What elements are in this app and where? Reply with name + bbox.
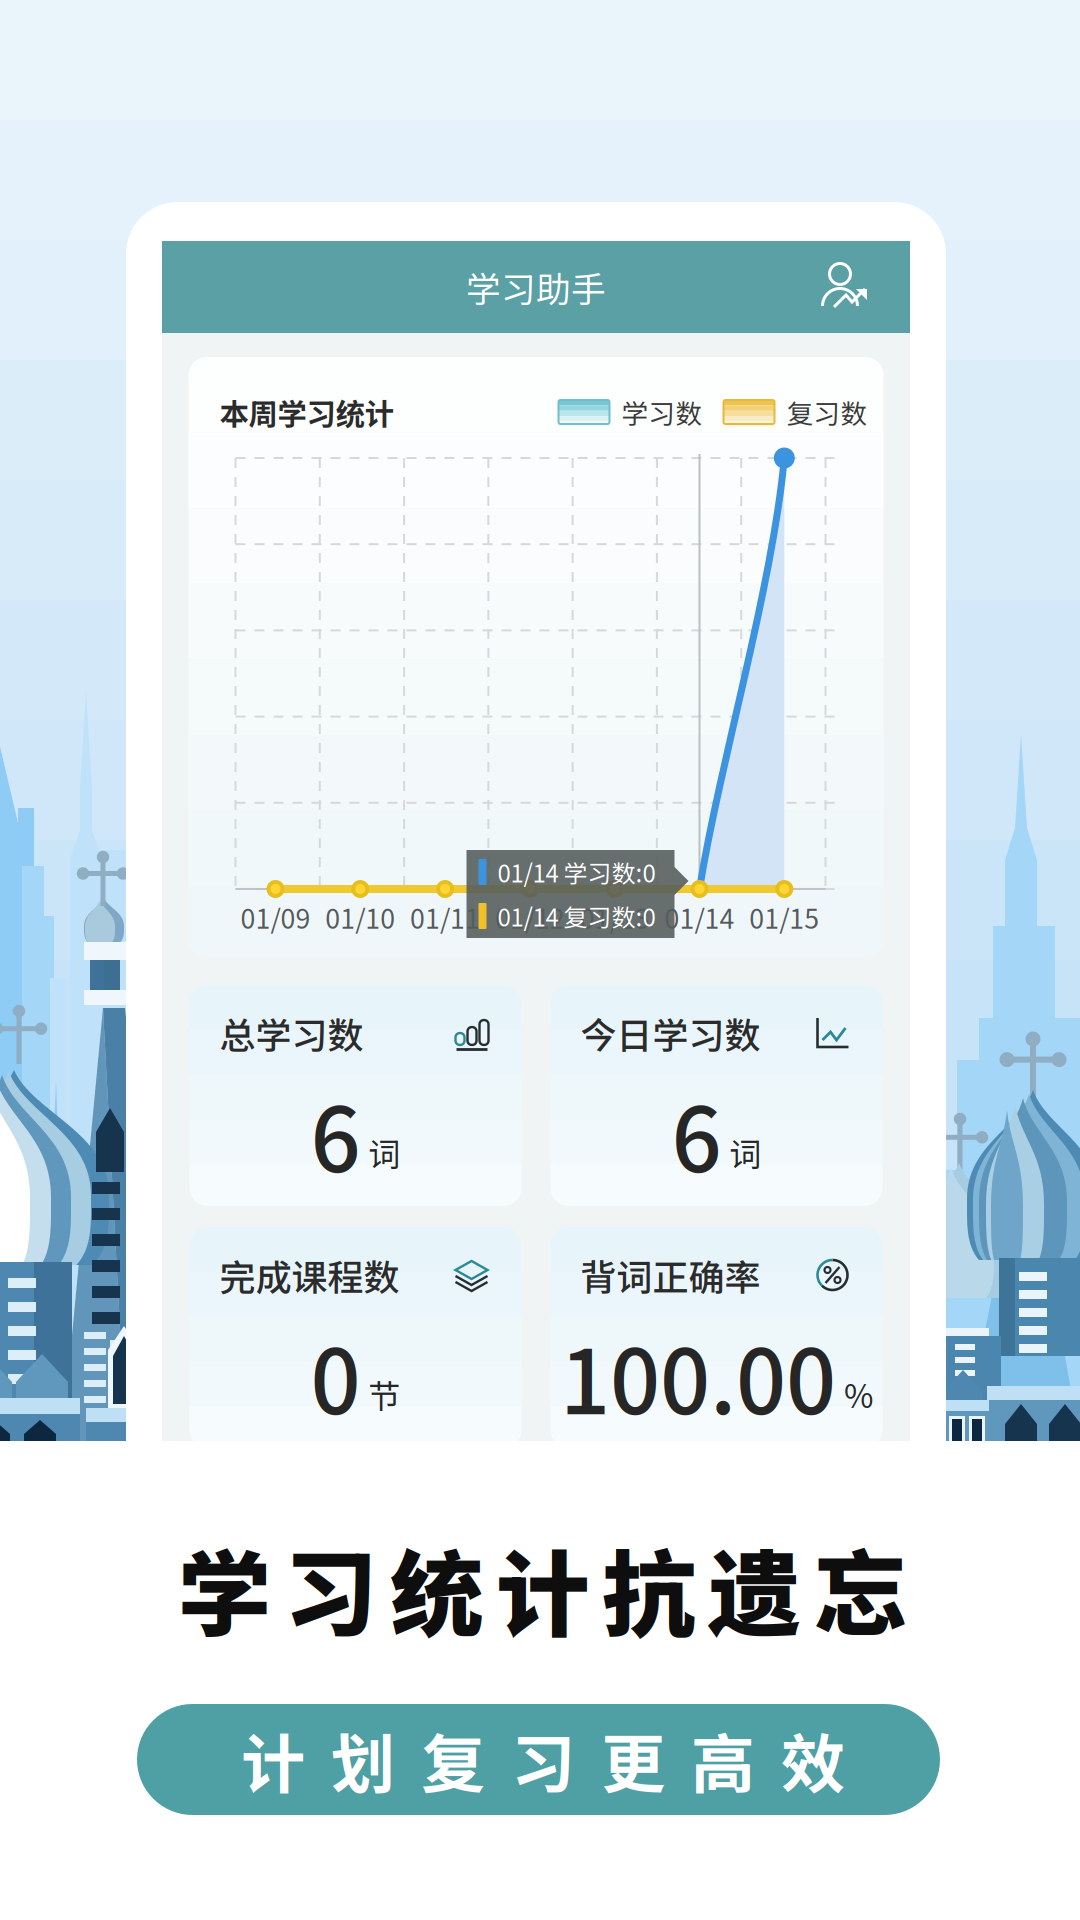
staticText: 6	[310, 1070, 360, 1198]
staticText: 学习助手	[466, 262, 606, 312]
staticText: 01/14 学习数:0	[497, 855, 655, 889]
staticText: 6	[671, 1070, 721, 1198]
staticText: 01/14 复习数:0	[497, 899, 655, 933]
button[interactable]: 计划复习更高效	[137, 1704, 940, 1815]
staticText: 本周学习统计	[219, 391, 393, 433]
button[interactable]: 今日学习数	[550, 985, 882, 1206]
button[interactable]: 背词正确率	[550, 1227, 882, 1448]
staticText: %	[844, 1371, 873, 1417]
staticText: 词	[368, 1129, 400, 1175]
staticText: 节	[368, 1371, 400, 1417]
staticText: 学习数	[621, 393, 702, 431]
staticText: 01/09	[240, 898, 310, 936]
staticText: 01/15	[749, 898, 819, 936]
staticText: 01/12	[495, 898, 565, 936]
staticText: 01/13	[580, 898, 650, 936]
staticText: 0	[310, 1312, 360, 1440]
staticText: 学习统计抗遗忘	[178, 1520, 907, 1655]
staticText: 01/10	[325, 898, 395, 936]
staticText: 计划复习更高效	[241, 1713, 845, 1806]
staticText: 复习数	[786, 393, 867, 431]
staticText: 100.00	[560, 1312, 836, 1440]
staticText: 01/11	[410, 898, 480, 936]
staticText: 词	[729, 1129, 761, 1175]
staticText: 完成课程数	[219, 1249, 399, 1301]
button[interactable]: 完成课程数	[189, 1227, 521, 1448]
staticText: 背词正确率	[580, 1249, 760, 1301]
button[interactable]: 总学习数	[189, 985, 521, 1206]
staticText: 01/14	[664, 898, 734, 936]
staticText: 今日学习数	[580, 1007, 760, 1059]
staticText: 总学习数	[219, 1007, 363, 1059]
button[interactable]: 学习报告	[818, 259, 874, 315]
